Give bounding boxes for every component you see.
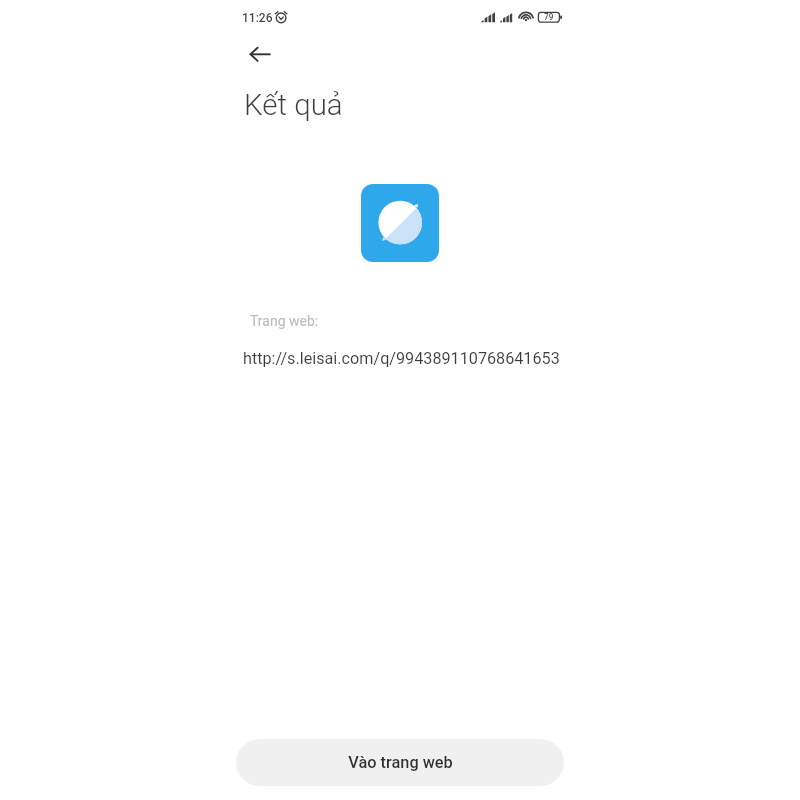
- button[interactable]: Vào trang web: [236, 739, 564, 786]
- staticText: Kết quả: [244, 88, 343, 123]
- staticText: 11:26: [242, 11, 273, 25]
- button[interactable]: Back: [236, 30, 284, 78]
- staticText: Trang web:: [250, 313, 319, 329]
- staticText: 79: [544, 12, 554, 22]
- staticText: http://s.leisai.com/q/994389110768641653: [243, 349, 560, 368]
- staticText: Vào trang web: [348, 753, 453, 772]
